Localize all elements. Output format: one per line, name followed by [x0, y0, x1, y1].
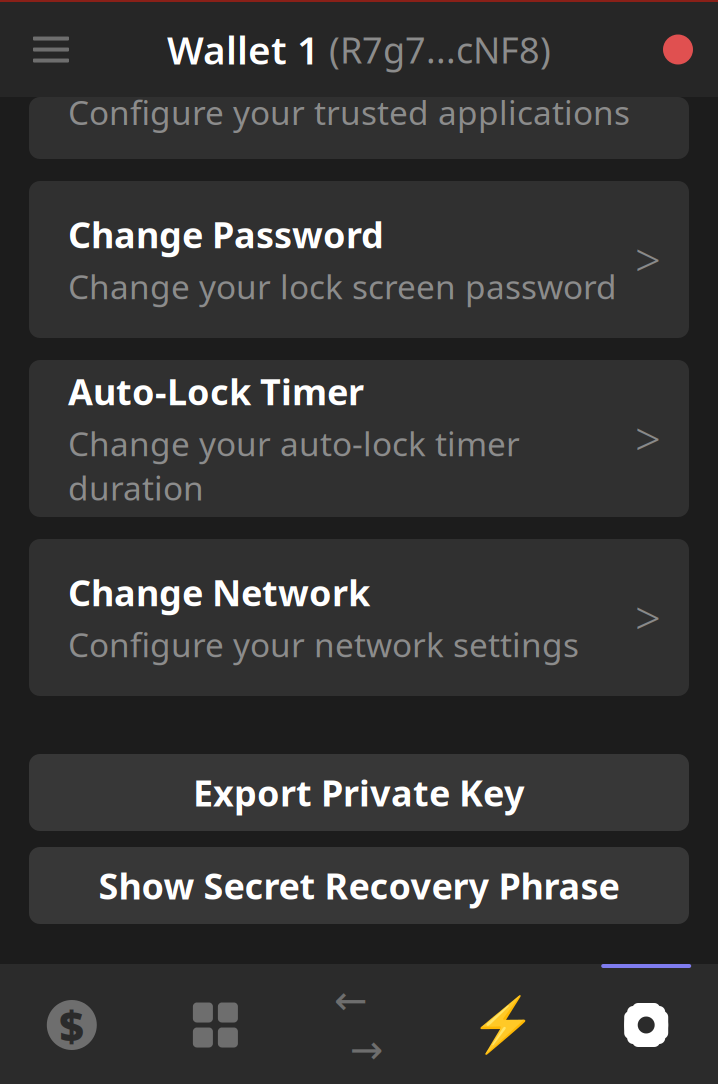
button[interactable]: Menu: [0, 4, 80, 94]
staticText: Change Network: [68, 568, 370, 616]
button[interactable]: Change Network: [29, 539, 689, 696]
staticText: Configure your trusted applications: [68, 90, 630, 134]
staticText: Change Password: [68, 210, 384, 258]
button[interactable]: Export Private Key: [29, 754, 689, 831]
staticText: Change your auto-lock timer duration: [68, 421, 520, 510]
button[interactable]: Transfer: [287, 964, 431, 1084]
staticText: ⚡: [470, 994, 536, 1055]
button[interactable]: Auto-Lock Timer: [29, 360, 689, 517]
staticText: Change your lock screen password: [68, 264, 617, 309]
staticText: (R7g7...cNF8): [329, 26, 551, 73]
button[interactable]: Apps: [144, 964, 287, 1084]
button[interactable]: Balances: [0, 964, 144, 1084]
button[interactable]: Show Secret Recovery Phrase: [29, 847, 689, 924]
staticText: ←: [334, 978, 368, 1023]
staticText: $: [59, 997, 84, 1053]
button[interactable]: Disconnect: [638, 4, 718, 94]
staticText: Auto-Lock Timer: [68, 367, 364, 415]
button[interactable]: Settings: [574, 964, 718, 1084]
button[interactable]: Activity: [431, 964, 574, 1084]
staticText: >: [635, 229, 661, 290]
staticText: >: [635, 408, 661, 469]
staticText: Export Private Key: [193, 769, 525, 816]
staticText: Show Secret Recovery Phrase: [98, 862, 619, 909]
staticText: Wallet 1: [167, 24, 319, 75]
staticText: Configure your network settings: [68, 622, 579, 667]
staticText: →: [350, 1027, 384, 1072]
staticText: >: [635, 587, 661, 648]
button[interactable]: Change Password: [29, 181, 689, 338]
